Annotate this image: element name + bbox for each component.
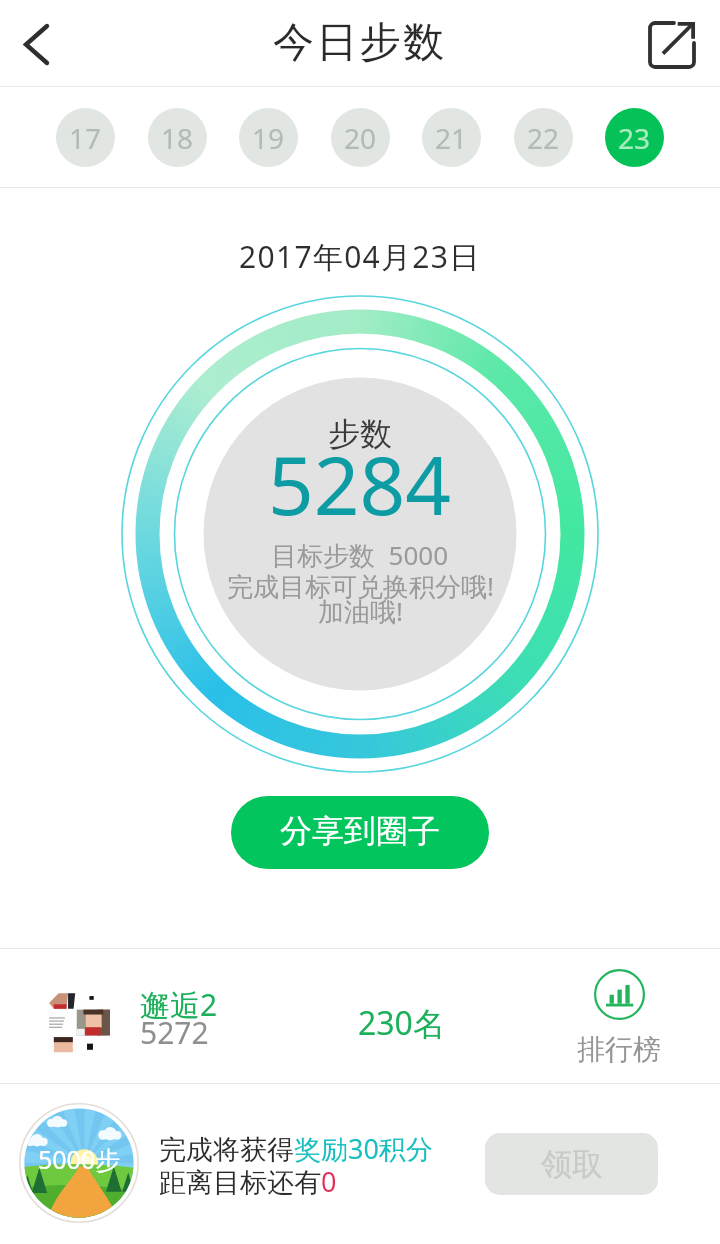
button[interactable]: 分享到圈子	[231, 796, 489, 869]
staticText: 加油哦!	[318, 593, 403, 629]
button[interactable]: 19	[239, 108, 298, 167]
staticText: 邂逅2	[140, 984, 218, 1025]
staticText: 21	[435, 119, 468, 157]
staticText: 20	[344, 119, 377, 157]
staticText: 距离目标还有0	[159, 1163, 337, 1200]
button[interactable]: 17	[56, 108, 115, 167]
staticText: 18	[161, 119, 194, 157]
button[interactable]: 排行榜	[569, 969, 669, 1067]
button[interactable]: 22	[514, 108, 573, 167]
staticText: 2017年04月23日	[239, 236, 481, 274]
staticText: 19	[252, 119, 285, 157]
staticText: 步数	[328, 414, 392, 454]
button[interactable]: 21	[422, 108, 481, 167]
staticText: 领取	[541, 1145, 603, 1184]
staticText: 今日步数	[273, 17, 447, 69]
staticText: 23	[618, 119, 651, 157]
button[interactable]: 领取	[485, 1133, 658, 1195]
button[interactable]: 23	[605, 108, 664, 167]
staticText: 17	[69, 119, 102, 157]
staticText: 5000步	[38, 1142, 121, 1176]
button[interactable]: Share	[628, 2, 716, 88]
staticText: 22	[527, 119, 560, 157]
button[interactable]: 18	[148, 108, 207, 167]
staticText: 230名	[358, 1001, 445, 1045]
staticText: 5284	[268, 429, 452, 538]
staticText: 目标步数 5000	[271, 537, 449, 573]
staticText: 完成将获得奖励30积分	[159, 1130, 433, 1167]
staticText: 5272	[140, 1012, 209, 1053]
staticText: 完成目标可兑换积分哦!	[227, 568, 494, 604]
staticText: 排行榜	[577, 1032, 661, 1067]
button[interactable]: Back	[0, 1, 80, 87]
staticText: 分享到圈子	[280, 811, 440, 851]
button[interactable]: 20	[331, 108, 390, 167]
